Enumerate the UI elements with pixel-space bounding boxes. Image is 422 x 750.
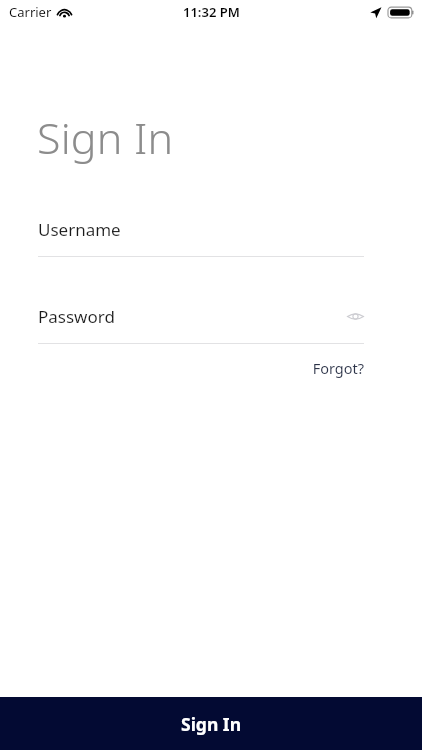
staticText: 11:32 PM [183, 3, 240, 21]
staticText: Carrier [9, 3, 52, 21]
button[interactable]: Show password [342, 303, 368, 329]
button[interactable]: Sign In [0, 697, 422, 750]
staticText: Sign In [37, 108, 174, 167]
staticText: Username [38, 218, 121, 241]
button[interactable]: Username [38, 218, 364, 257]
staticText: Password [38, 305, 115, 328]
button[interactable]: Forgot? [298, 358, 364, 378]
button[interactable]: Password [38, 305, 364, 344]
staticText: Forgot? [312, 358, 364, 378]
staticText: Sign In [181, 712, 242, 736]
